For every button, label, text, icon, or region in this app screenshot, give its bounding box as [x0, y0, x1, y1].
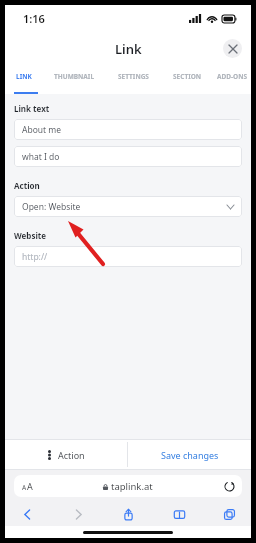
staticText: LINK: [16, 72, 32, 81]
staticText: what I do: [22, 151, 60, 163]
button[interactable]: SECTION: [161, 65, 213, 94]
staticText: THUMBNAIL: [54, 72, 95, 81]
button[interactable]: Close: [223, 39, 242, 58]
staticText: Link text: [14, 103, 50, 114]
staticText: ADD-ONS: [217, 72, 248, 81]
staticText: 1:16: [23, 11, 45, 26]
staticText: A: [27, 480, 33, 492]
button[interactable]: Save changes: [128, 439, 251, 470]
button[interactable]: SETTINGS: [105, 65, 161, 94]
button[interactable]: Reload: [224, 481, 234, 491]
button[interactable]: Action: [5, 439, 127, 470]
button[interactable]: Back: [15, 502, 39, 526]
staticText: http://: [22, 251, 48, 263]
button[interactable]: taplink.at: [14, 475, 242, 497]
staticText: Action: [14, 180, 40, 191]
staticText: Link: [115, 40, 142, 58]
staticText: Action: [58, 449, 85, 461]
staticText: A: [22, 483, 27, 492]
staticText: About me: [22, 124, 62, 136]
button[interactable]: LINK: [5, 65, 43, 94]
button[interactable]: Forward: [66, 502, 90, 526]
button[interactable]: Tabs: [217, 502, 241, 526]
staticText: SETTINGS: [118, 72, 149, 81]
button[interactable]: ADD-ONS: [213, 65, 251, 94]
button[interactable]: http://: [14, 246, 242, 267]
button[interactable]: Open: Website: [14, 196, 242, 217]
staticText: taplink.at: [111, 480, 153, 493]
button[interactable]: what I do: [14, 146, 242, 167]
button[interactable]: About me: [14, 119, 242, 140]
staticText: SECTION: [173, 72, 202, 81]
staticText: Save changes: [161, 449, 219, 461]
staticText: Website: [14, 230, 47, 241]
button[interactable]: Bookmarks: [167, 502, 191, 526]
button[interactable]: THUMBNAIL: [43, 65, 105, 94]
button[interactable]: Share: [116, 502, 140, 526]
staticText: Open: Website: [22, 201, 81, 213]
